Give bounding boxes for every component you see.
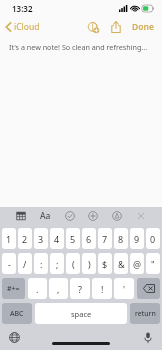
staticText: 1 — [6, 233, 12, 245]
button[interactable]: Checklist — [63, 209, 77, 223]
staticText: & — [118, 258, 125, 270]
button[interactable]: 5 — [66, 228, 80, 249]
staticText: ( — [72, 258, 75, 270]
staticText: 9 — [134, 233, 140, 245]
button[interactable]: ! — [92, 278, 112, 299]
staticText: $ — [102, 258, 108, 270]
button[interactable]: 6 — [82, 228, 96, 249]
staticText: ' — [123, 283, 126, 295]
staticText: 8 — [118, 233, 124, 245]
staticText: 5 — [70, 233, 76, 245]
button[interactable]: @ — [130, 253, 144, 274]
button[interactable]: Markup — [110, 209, 124, 223]
staticText: , — [57, 283, 60, 295]
button[interactable]: iCloud — [0, 18, 46, 36]
button[interactable]: / — [18, 253, 32, 274]
staticText: 6 — [86, 233, 92, 245]
button[interactable]: 0 — [146, 228, 160, 249]
button[interactable]: #+= — [2, 278, 25, 299]
button[interactable]: ' — [114, 278, 134, 299]
button[interactable]: & — [114, 253, 128, 274]
staticText: - — [8, 258, 11, 270]
button[interactable]: 7 — [98, 228, 112, 249]
button[interactable]: " — [146, 253, 160, 274]
button[interactable]: 1 — [2, 228, 16, 249]
staticText: ! — [101, 283, 104, 295]
button[interactable]: 4 — [50, 228, 64, 249]
button[interactable]: Dictate — [142, 330, 154, 345]
button[interactable]: ABC — [2, 303, 32, 324]
button[interactable]: Close keyboard — [134, 209, 148, 223]
staticText: return — [135, 309, 156, 319]
button[interactable]: space — [35, 303, 127, 324]
button[interactable]: Change keyboard — [7, 330, 22, 345]
staticText: Aa — [40, 210, 51, 222]
button[interactable]: 3 — [34, 228, 48, 249]
button[interactable]: 8 — [114, 228, 128, 249]
staticText: 4 — [54, 233, 60, 245]
staticText: ABC — [10, 309, 24, 319]
staticText: space — [71, 309, 92, 319]
staticText: : — [40, 258, 43, 270]
button[interactable]: , — [49, 278, 68, 299]
staticText: 0 — [150, 233, 156, 245]
button[interactable]: ) — [82, 253, 96, 274]
button[interactable]: Backspace — [137, 278, 160, 299]
button[interactable]: $ — [98, 253, 112, 274]
staticText: Done — [132, 21, 154, 33]
staticText: 13:32 — [12, 3, 33, 14]
button[interactable]: ? — [70, 278, 90, 299]
button[interactable]: Share — [107, 17, 125, 37]
staticText: #+= — [7, 284, 20, 294]
button[interactable]: : — [34, 253, 48, 274]
staticText: It's a new note! So clean and refreshing… — [9, 42, 148, 52]
button[interactable]: Attach — [86, 209, 100, 223]
button[interactable]: Done — [129, 18, 157, 36]
button[interactable]: Format — [38, 208, 53, 224]
staticText: ) — [88, 258, 91, 270]
button[interactable]: Add People — [84, 18, 103, 37]
staticText: @ — [133, 258, 142, 270]
button[interactable]: Table — [14, 209, 28, 223]
staticText: iCloud — [14, 21, 40, 33]
button[interactable]: 9 — [130, 228, 144, 249]
button[interactable]: 2 — [18, 228, 32, 249]
staticText: ? — [78, 283, 82, 295]
button[interactable]: ; — [50, 253, 64, 274]
staticText: 7 — [102, 233, 108, 245]
button[interactable]: - — [2, 253, 16, 274]
button[interactable]: . — [28, 278, 47, 299]
staticText: / — [23, 258, 27, 270]
staticText: 2 — [22, 233, 28, 245]
button[interactable]: ( — [66, 253, 80, 274]
button[interactable]: return — [130, 303, 160, 324]
staticText: . — [36, 283, 39, 295]
staticText: 3 — [38, 233, 44, 245]
staticText: " — [151, 258, 155, 270]
staticText: ; — [56, 258, 59, 270]
